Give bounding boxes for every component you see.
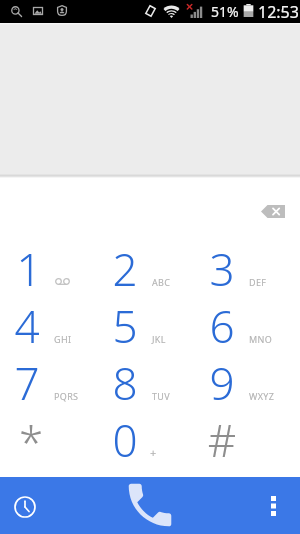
button[interactable]: 5 — [98, 287, 195, 344]
staticText: 8 — [108, 353, 142, 410]
staticText: MNO — [249, 333, 273, 345]
staticText: 12:53 — [258, 1, 299, 23]
staticText: + — [150, 445, 157, 460]
staticText: DEF — [249, 276, 267, 288]
staticText: JKL — [152, 333, 166, 345]
staticText: ABC — [152, 276, 171, 288]
button[interactable]: Dialpad — [115, 477, 187, 534]
button[interactable]: 8 — [98, 344, 195, 401]
staticText: 1 — [12, 239, 46, 296]
button[interactable]: Backspace — [255, 197, 291, 225]
button[interactable]: 3 — [195, 230, 300, 287]
staticText: 6 — [205, 296, 239, 353]
button[interactable]: 1 — [0, 230, 98, 287]
button[interactable]: 9 — [195, 344, 300, 401]
button[interactable]: 7 — [0, 344, 98, 401]
staticText: 2 — [108, 239, 142, 296]
staticText: WXYZ — [249, 390, 275, 402]
button[interactable]: Call history — [0, 477, 60, 534]
staticText: PQRS — [54, 390, 79, 402]
staticText: 7 — [10, 353, 44, 410]
button[interactable]: # — [195, 401, 300, 458]
staticText: * — [14, 412, 48, 469]
button[interactable]: * — [0, 401, 98, 458]
staticText: 4 — [10, 296, 44, 353]
staticText: GHI — [54, 333, 72, 345]
staticText: TUV — [152, 390, 171, 402]
staticText: 0 — [108, 410, 142, 467]
staticText: # — [205, 410, 239, 467]
staticText: 3 — [205, 239, 239, 296]
button[interactable]: 0 — [98, 401, 195, 458]
button[interactable]: 4 — [0, 287, 98, 344]
staticText: 5 — [108, 296, 142, 353]
button[interactable]: More options — [252, 477, 300, 534]
staticText: 9 — [205, 353, 239, 410]
button[interactable]: 6 — [195, 287, 300, 344]
staticText: 51% — [211, 2, 239, 21]
button[interactable]: 2 — [98, 230, 195, 287]
